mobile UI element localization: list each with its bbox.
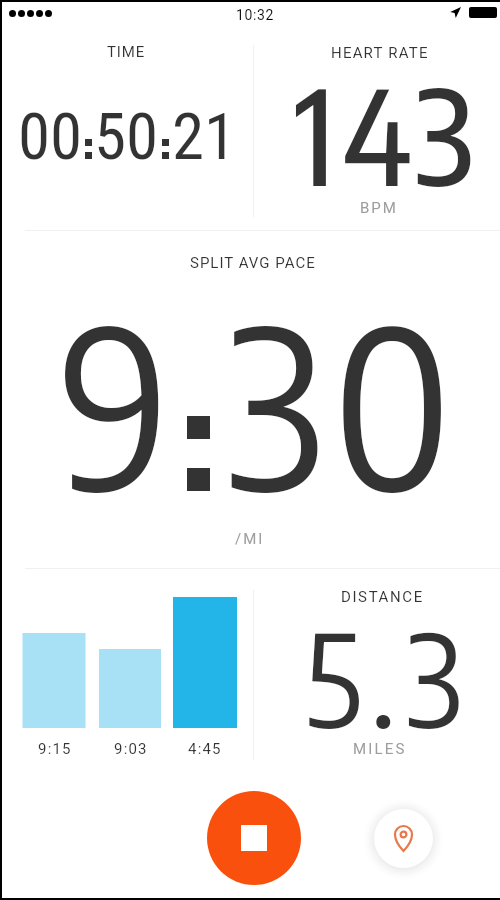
staticText: 00 (18, 99, 83, 175)
staticText: 9 (60, 265, 171, 539)
staticText: 21 (172, 99, 237, 175)
staticText: 10:32 (236, 7, 274, 23)
staticText: 4:45 (188, 740, 222, 758)
staticText: 143 (295, 52, 482, 214)
staticText: SPLIT AVG PACE (190, 254, 316, 272)
staticText: BPM (360, 199, 398, 217)
staticText: 30 (227, 265, 460, 539)
staticText: /MI (235, 530, 265, 548)
staticText: HEART RATE (331, 44, 429, 62)
staticText: 5.3 (305, 597, 472, 756)
staticText: 9:15 (38, 740, 72, 758)
button[interactable]: Stop workout (207, 791, 301, 885)
staticText: DISTANCE (341, 588, 424, 606)
staticText: MILES (353, 740, 407, 758)
staticText: 9:03 (114, 740, 148, 758)
staticText: TIME (107, 43, 146, 61)
staticText: 50 (94, 99, 159, 175)
button[interactable]: Map (374, 809, 433, 868)
